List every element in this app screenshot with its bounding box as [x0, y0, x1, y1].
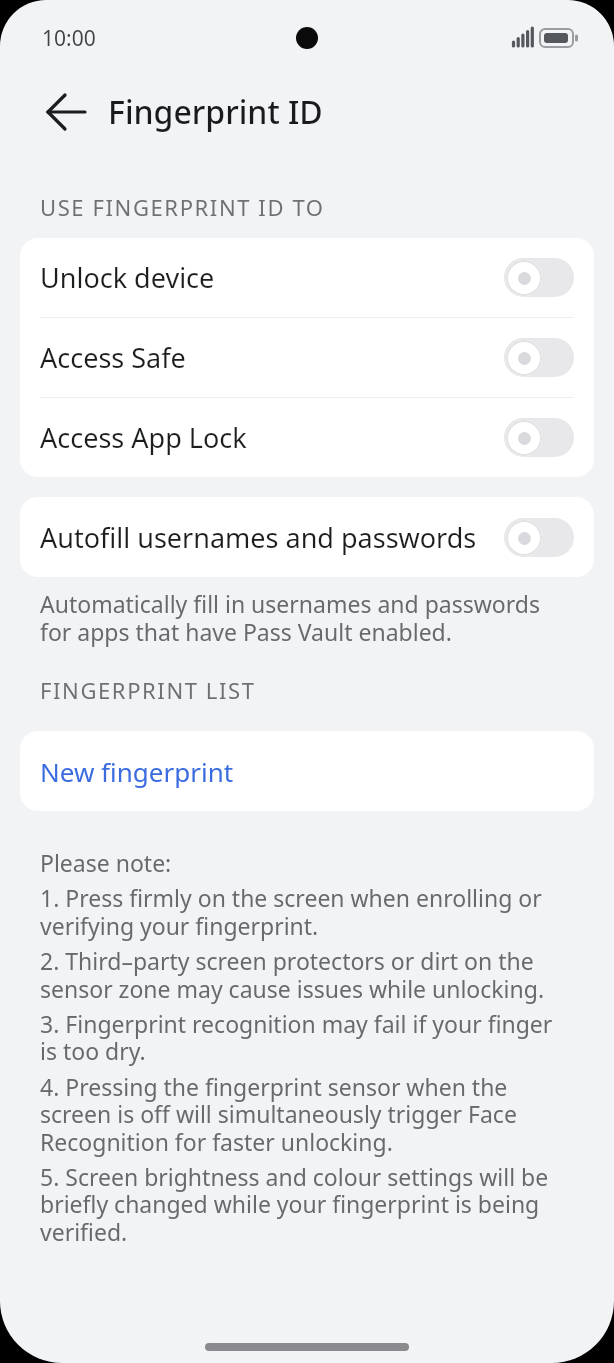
staticText: screen is off will simultaneously trigge… [40, 1098, 517, 1129]
staticText: 2. Third–party screen protectors or dirt… [40, 945, 534, 976]
staticText: 10:00 [42, 24, 96, 52]
staticText: verified. [40, 1216, 128, 1247]
staticText: Recognition for faster unlocking. [40, 1126, 393, 1157]
staticText: USE FINGERPRINT ID TO [40, 192, 325, 222]
staticText: 1. Press firmly on the screen when enrol… [40, 882, 542, 913]
staticText: New fingerprint [40, 754, 234, 789]
staticText: verifying your fingerprint. [40, 910, 319, 941]
staticText: Fingerprint ID [108, 90, 323, 134]
staticText: Please note: [40, 847, 172, 878]
staticText: briefly changed while your fingerprint i… [40, 1188, 540, 1219]
button[interactable]: Access Safe [20, 318, 594, 397]
button[interactable]: Unlock device [20, 238, 594, 317]
button[interactable]: New fingerprint [20, 731, 594, 811]
button[interactable]: Access App Lock [20, 398, 594, 477]
staticText: Automatically fill in usernames and pass… [40, 588, 540, 619]
button[interactable]: Autofill usernames and passwords [20, 497, 594, 577]
staticText: for apps that have Pass Vault enabled. [40, 616, 452, 647]
staticText: sensor zone may cause issues while unloc… [40, 973, 545, 1004]
staticText: 3. Fingerprint recognition may fail if y… [40, 1008, 553, 1039]
staticText: Access Safe [40, 339, 186, 376]
button[interactable] [34, 80, 98, 144]
staticText: is too dry. [40, 1035, 146, 1066]
staticText: FINGERPRINT LIST [40, 675, 256, 705]
staticText: Autofill usernames and passwords [40, 519, 477, 556]
staticText: Unlock device [40, 259, 215, 296]
staticText: 5. Screen brightness and colour settings… [40, 1161, 549, 1192]
staticText: 4. Pressing the fingerprint sensor when … [40, 1071, 508, 1102]
staticText: Access App Lock [40, 419, 247, 456]
